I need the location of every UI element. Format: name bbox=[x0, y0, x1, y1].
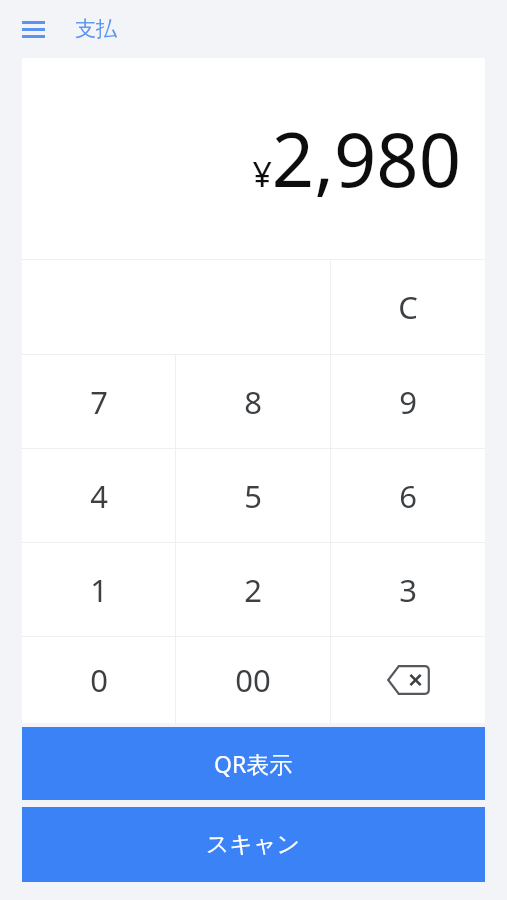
staticText: スキャン bbox=[206, 830, 301, 859]
button[interactable]: 6 bbox=[331, 449, 485, 542]
staticText: 2 bbox=[244, 569, 262, 611]
button[interactable]: 9 bbox=[331, 355, 485, 448]
button[interactable]: 4 bbox=[22, 449, 175, 542]
button[interactable]: 3 bbox=[331, 543, 485, 636]
staticText: 4 bbox=[90, 475, 108, 517]
staticText: 6 bbox=[399, 475, 417, 517]
staticText: 9 bbox=[399, 381, 417, 423]
staticText: ¥2,980 bbox=[252, 108, 461, 209]
staticText: 0 bbox=[90, 659, 108, 701]
button[interactable]: 1 bbox=[22, 543, 175, 636]
button[interactable]: 0 bbox=[22, 637, 175, 723]
staticText: QR表示 bbox=[214, 748, 293, 779]
button[interactable]: QR表示 bbox=[22, 727, 485, 800]
button[interactable]: 8 bbox=[176, 355, 330, 448]
button[interactable]: Backspace bbox=[331, 637, 485, 723]
button[interactable]: スキャン bbox=[22, 807, 485, 882]
button[interactable]: 5 bbox=[176, 449, 330, 542]
staticText: 5 bbox=[244, 475, 262, 517]
button[interactable]: Menu bbox=[22, 14, 52, 44]
staticText: 8 bbox=[244, 381, 262, 423]
staticText: C bbox=[398, 286, 418, 328]
button[interactable]: C bbox=[331, 260, 485, 354]
staticText: 1 bbox=[90, 569, 108, 611]
staticText: 00 bbox=[235, 659, 271, 701]
staticText: 3 bbox=[399, 569, 417, 611]
button[interactable]: 00 bbox=[176, 637, 330, 723]
staticText: 7 bbox=[90, 381, 108, 423]
button[interactable]: 7 bbox=[22, 355, 175, 448]
staticText: 支払 bbox=[75, 16, 117, 42]
button[interactable]: 2 bbox=[176, 543, 330, 636]
